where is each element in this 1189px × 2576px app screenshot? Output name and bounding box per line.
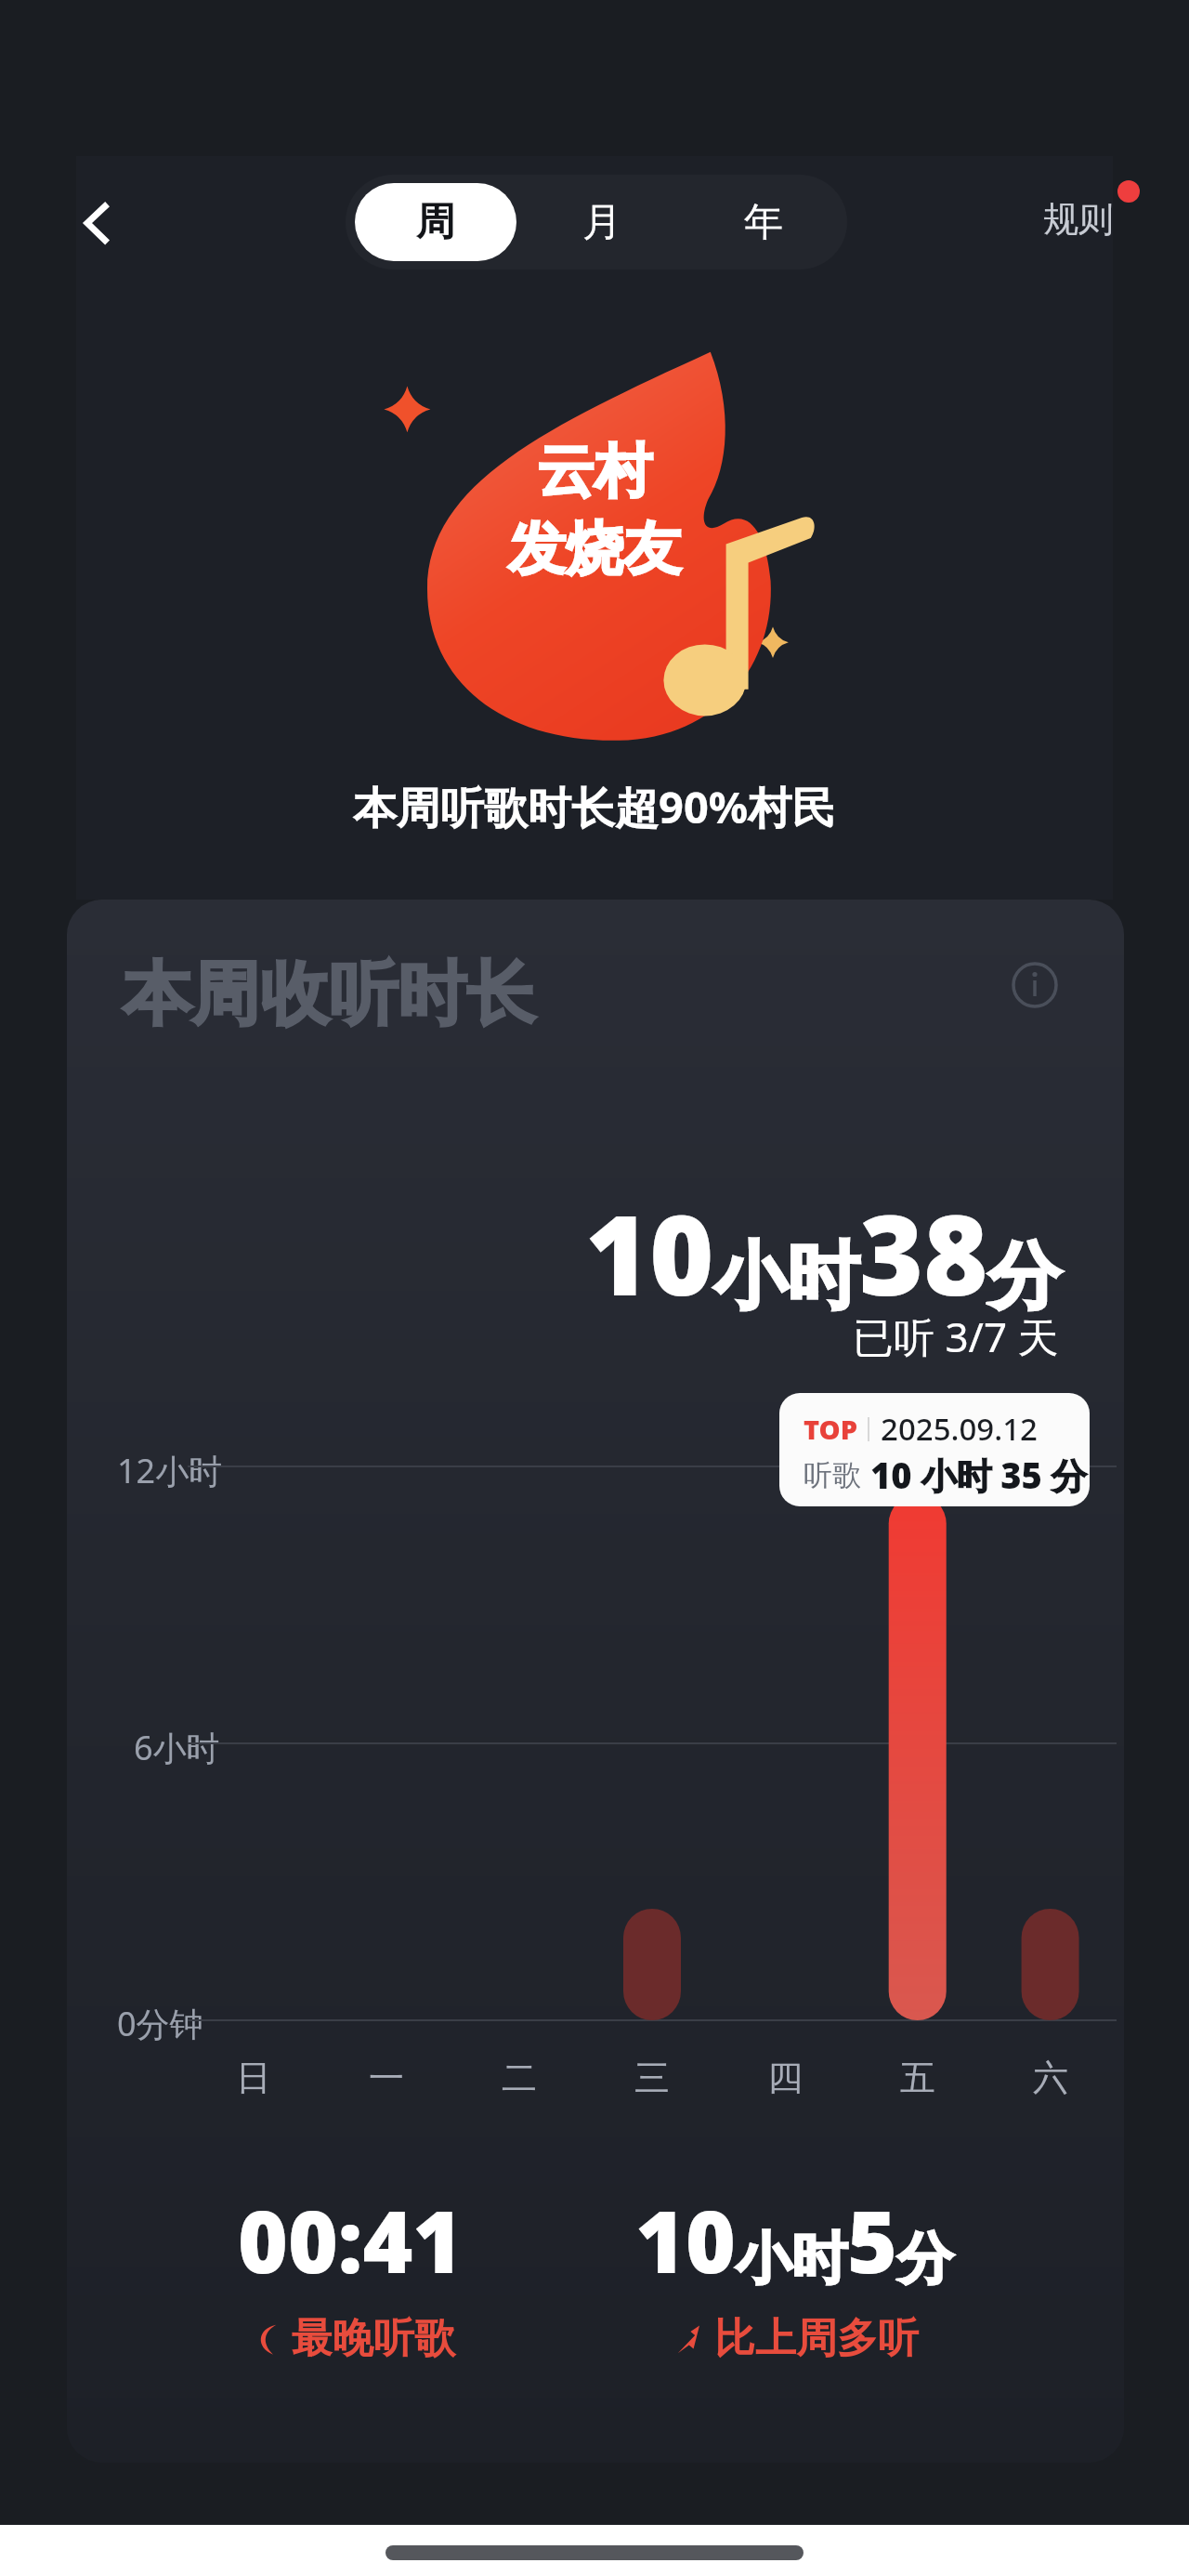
staticText: 本周听歌时长超90%村民 bbox=[353, 777, 836, 836]
staticText: 分 bbox=[988, 1231, 1061, 1322]
staticText: 0分钟 bbox=[117, 2001, 203, 2046]
button[interactable]: Back bbox=[48, 173, 149, 273]
button[interactable]: 周 bbox=[355, 183, 516, 261]
staticText: TOP bbox=[804, 1411, 858, 1447]
staticText: 已听 3/7 天 bbox=[853, 1308, 1059, 1364]
staticText: 10 bbox=[585, 1178, 714, 1328]
staticText: 听歌 bbox=[804, 1457, 861, 1493]
staticText: 10 bbox=[635, 2182, 736, 2298]
staticText: 月 bbox=[582, 198, 621, 247]
staticText: 5 bbox=[847, 2182, 897, 2298]
staticText: 日 bbox=[236, 2056, 271, 2100]
button[interactable]: 规则 bbox=[1026, 173, 1156, 271]
staticText: 00:41 bbox=[238, 2182, 464, 2298]
button[interactable]: 10 bbox=[635, 2182, 953, 2364]
staticText: 规则 bbox=[1043, 197, 1114, 242]
button[interactable]: Info bbox=[1001, 952, 1068, 1019]
staticText: 一 bbox=[369, 2056, 404, 2100]
button[interactable]: TOP bbox=[779, 1393, 1090, 1506]
staticText: 分 bbox=[897, 2224, 953, 2294]
button[interactable]: 月 bbox=[522, 183, 682, 261]
button[interactable]: 年 bbox=[684, 183, 843, 261]
staticText: 10 小时 35 分 bbox=[870, 1451, 1087, 1499]
staticText: 比上周多听 bbox=[714, 2313, 919, 2364]
staticText: 发烧友 bbox=[508, 513, 681, 585]
staticText: 年 bbox=[744, 198, 783, 247]
staticText: 小时 bbox=[736, 2224, 847, 2294]
staticText: 二 bbox=[502, 2056, 537, 2100]
staticText: 四 bbox=[767, 2056, 803, 2100]
staticText: 周 bbox=[416, 198, 455, 247]
staticText: 三 bbox=[634, 2056, 670, 2100]
staticText: 本周收听时长 bbox=[123, 952, 535, 1038]
staticText: 云村 bbox=[537, 435, 652, 507]
staticText: 五 bbox=[900, 2056, 935, 2100]
staticText: 六 bbox=[1033, 2056, 1068, 2100]
staticText: 2025.09.12 bbox=[881, 1408, 1038, 1450]
staticText: 38 bbox=[859, 1178, 988, 1328]
staticText: 小时 bbox=[714, 1231, 859, 1322]
staticText: 12小时 bbox=[117, 1448, 223, 1493]
staticText: 最晚听歌 bbox=[292, 2313, 455, 2364]
staticText: 6小时 bbox=[134, 1725, 220, 1770]
button[interactable]: 00:41 bbox=[238, 2182, 464, 2364]
